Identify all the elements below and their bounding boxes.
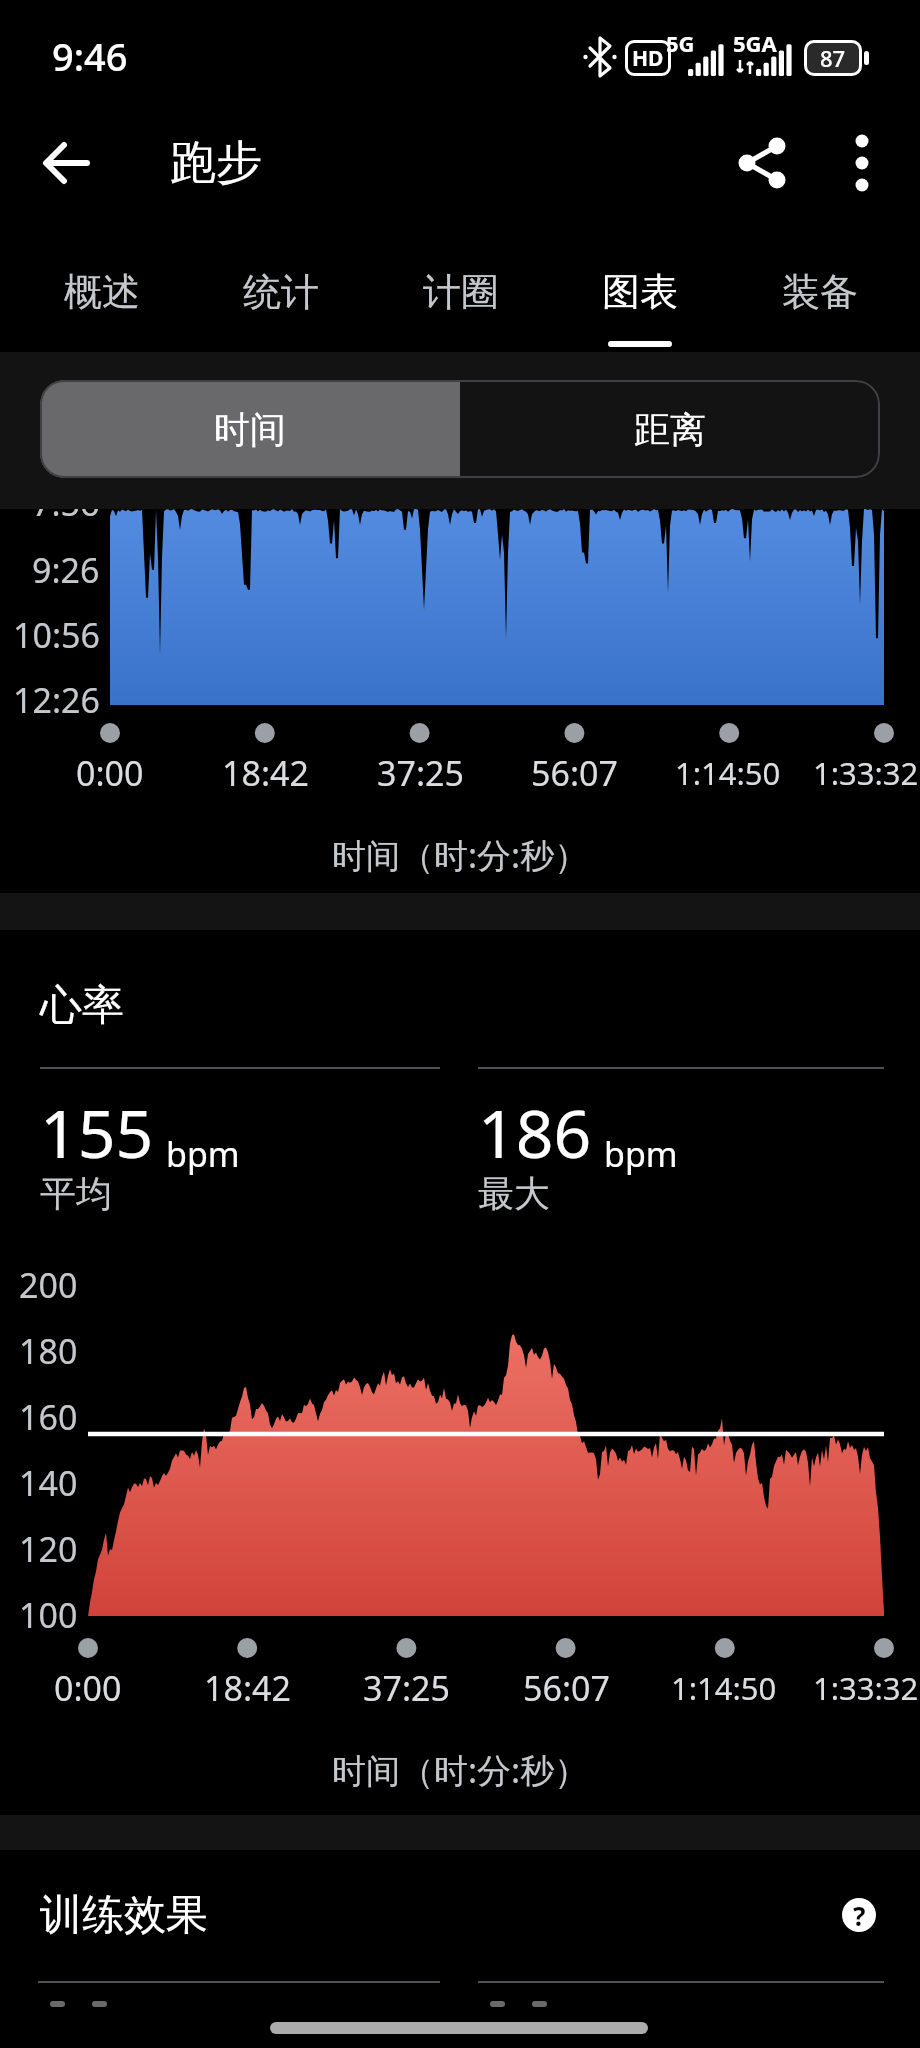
staticText: 5G	[666, 28, 695, 58]
button[interactable]	[726, 127, 798, 199]
staticText: 距离	[634, 407, 706, 452]
button[interactable]: 计圈	[381, 260, 541, 324]
staticText: 训练效果	[40, 1889, 208, 1942]
button[interactable]: 时间	[40, 380, 460, 478]
staticText: 160	[19, 1394, 78, 1440]
staticText: 计圈	[423, 268, 499, 316]
staticText: 56:07	[523, 1665, 610, 1711]
staticText: 概述	[64, 268, 140, 316]
staticText: 140	[19, 1460, 78, 1506]
button[interactable]: ?	[842, 1898, 876, 1932]
staticText: 10:56	[13, 612, 100, 658]
staticText: 18:42	[204, 1665, 291, 1711]
staticText: 12:26	[13, 677, 100, 723]
staticText: 图表	[602, 268, 678, 316]
button[interactable]: 图表	[560, 260, 720, 324]
staticText: bpm	[166, 1131, 240, 1177]
staticText: 时间	[214, 407, 286, 452]
staticText: 时间（时:分:秒）	[332, 1747, 589, 1793]
staticText: 1:14:50	[671, 1667, 777, 1709]
staticText: 最大	[478, 1171, 550, 1216]
staticText: 37:25	[377, 750, 464, 796]
staticText: 200	[19, 1262, 78, 1308]
staticText: 186	[478, 1087, 592, 1177]
staticText: 155	[40, 1087, 154, 1177]
staticText: 37:25	[363, 1665, 450, 1711]
staticText: 56:07	[531, 750, 618, 796]
staticText: 0:00	[76, 750, 144, 796]
staticText: HD	[632, 44, 664, 73]
staticText: 平均	[40, 1171, 112, 1216]
staticText: 时间（时:分:秒）	[332, 832, 589, 878]
button[interactable]: 装备	[740, 260, 900, 324]
staticText: 18:42	[222, 750, 309, 796]
staticText: 5GA	[733, 28, 777, 58]
staticText: 100	[19, 1592, 78, 1638]
button[interactable]	[30, 127, 102, 199]
staticText: 0:00	[54, 1665, 122, 1711]
staticText: 跑步	[170, 134, 262, 192]
staticText: ?	[853, 1898, 866, 1932]
staticText: 180	[19, 1328, 78, 1374]
staticText: 统计	[243, 268, 319, 316]
staticText: 9:26	[32, 547, 100, 593]
button[interactable]: 统计	[201, 260, 361, 324]
staticText: 装备	[782, 268, 858, 316]
staticText: 9:46	[52, 30, 128, 82]
staticText: 120	[19, 1526, 78, 1572]
staticText: 1:33:32	[813, 752, 919, 794]
staticText: 心率	[40, 979, 124, 1032]
button[interactable]: 距离	[460, 380, 880, 478]
staticText: bpm	[604, 1131, 678, 1177]
staticText: 1:33:32	[813, 1667, 919, 1709]
staticText: 87	[820, 43, 846, 73]
button[interactable]: 概述	[22, 260, 182, 324]
staticText: 1:14:50	[675, 752, 781, 794]
button[interactable]	[826, 127, 898, 199]
staticText: 7:56	[32, 480, 100, 526]
